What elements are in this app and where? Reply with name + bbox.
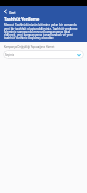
staticText: Mevcut Taahhüdünüzün bitimine yakın bir … <box>4 23 80 40</box>
staticText: Kampanya Değişikliği Yapacağınız Hizmet <box>4 45 55 49</box>
other: Back <box>3 9 8 14</box>
staticText: Taahhüt Yenileme <box>4 16 40 22</box>
button[interactable]: Back <box>0 8 22 15</box>
other: Open list <box>77 53 81 57</box>
button[interactable]: Seçiniz <box>3 50 84 59</box>
staticText: Seçiniz <box>5 53 14 57</box>
staticText: Geri <box>9 10 16 14</box>
